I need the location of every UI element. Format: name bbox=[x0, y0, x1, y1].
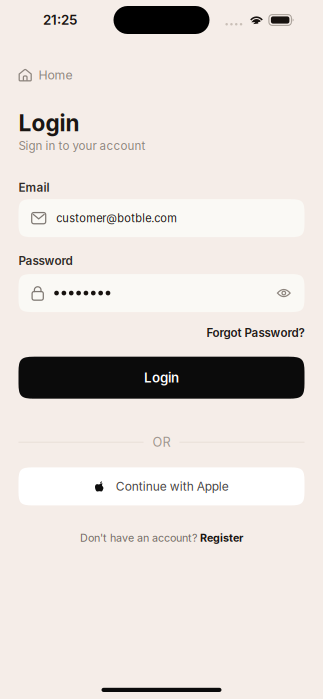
button[interactable]: Show password bbox=[276, 288, 291, 299]
staticText: Don't have an account? bbox=[80, 531, 200, 544]
staticText: Email bbox=[18, 180, 49, 195]
staticText: Login bbox=[144, 370, 179, 386]
staticText: Register bbox=[200, 531, 243, 544]
button[interactable]: Register bbox=[200, 531, 243, 544]
staticText: OR bbox=[152, 434, 170, 450]
staticText: 21:25 bbox=[43, 12, 77, 28]
button[interactable]: Home bbox=[0, 67, 91, 83]
staticText: Sign in to your account bbox=[18, 139, 145, 153]
staticText: customer@botble.com bbox=[56, 211, 177, 225]
button[interactable]: Login bbox=[18, 357, 304, 399]
staticText: Login bbox=[18, 109, 79, 137]
button[interactable]: Continue with Apple bbox=[18, 467, 304, 505]
button[interactable]: Forgot Password? bbox=[206, 326, 304, 340]
staticText: Password bbox=[18, 254, 72, 268]
staticText: Continue with Apple bbox=[116, 479, 229, 494]
staticText: Forgot Password? bbox=[206, 326, 304, 340]
staticText: Home bbox=[38, 68, 72, 82]
